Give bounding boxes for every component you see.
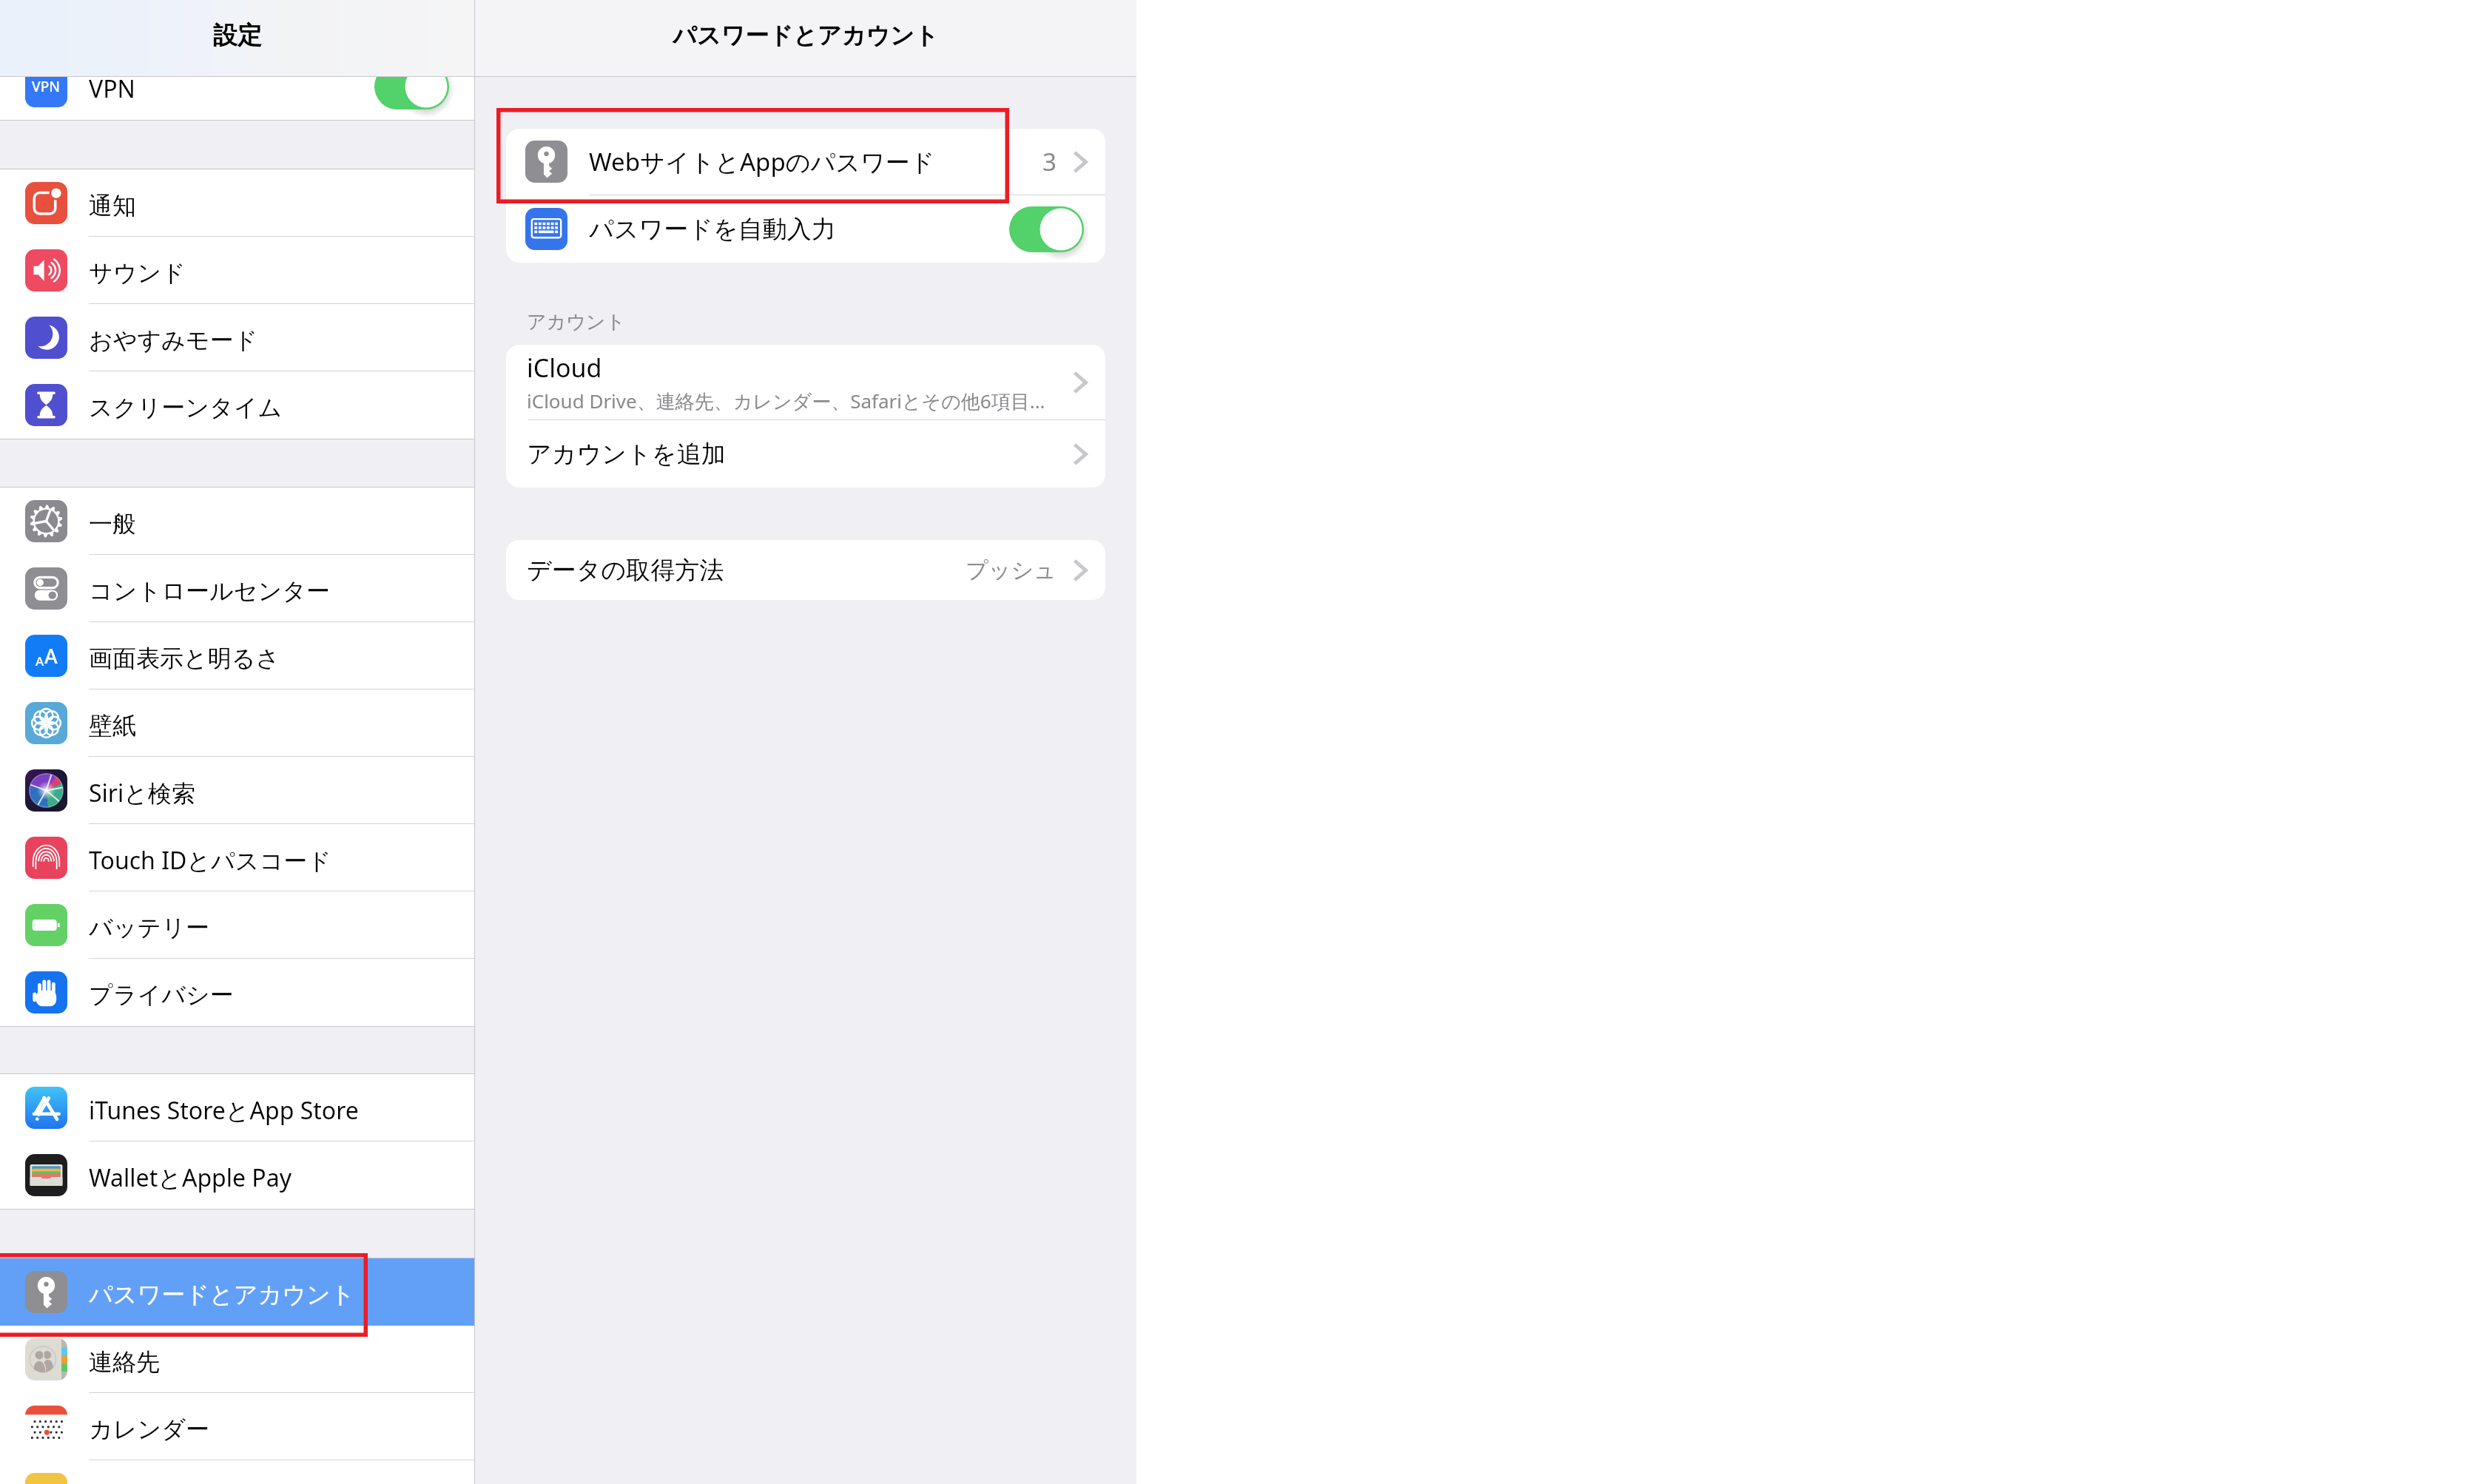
button[interactable]: WebサイトとAppのパスワード: [506, 129, 1105, 195]
staticText: データの取得方法: [527, 555, 966, 586]
staticText: プッシュ: [966, 556, 1057, 584]
button[interactable]: スクリーンタイム: [0, 371, 474, 439]
staticText: iCloud Drive、連絡先、カレンダー、Safariとその他6項目...: [527, 388, 1045, 414]
staticText: WalletとApple Pay: [89, 1161, 454, 1194]
button[interactable]: 通知: [0, 169, 474, 237]
staticText: おやすみモード: [89, 326, 454, 355]
button[interactable]: VPN on: [370, 59, 454, 114]
button[interactable]: iTunes StoreとApp Store: [0, 1074, 474, 1141]
staticText: 設定: [213, 20, 262, 51]
staticText: 通知: [89, 191, 454, 220]
staticText: VPN: [89, 72, 370, 105]
button[interactable]: 一般: [0, 488, 474, 555]
button[interactable]: おやすみモード: [0, 304, 474, 371]
staticText: アカウント: [527, 310, 626, 334]
staticText: パスワードを自動入力: [589, 214, 1005, 245]
staticText: パスワードとアカウント: [89, 1280, 454, 1309]
button[interactable]: Touch IDとパスコード: [0, 824, 474, 891]
staticText: 壁紙: [89, 711, 454, 741]
staticText: サウンド: [89, 258, 454, 288]
button[interactable]: アカウントを追加: [506, 420, 1105, 488]
staticText: 3: [1042, 145, 1057, 178]
button[interactable]: コントロールセンター: [0, 555, 474, 622]
staticText: コントロールセンター: [89, 576, 454, 606]
button[interactable]: A: [0, 622, 474, 689]
staticText: 画面表示と明るさ: [89, 644, 454, 673]
staticText: iTunes StoreとApp Store: [89, 1094, 454, 1127]
button[interactable]: カレンダー: [0, 1393, 474, 1460]
button[interactable]: パスワードを自動入力: [506, 195, 1105, 263]
staticText: バッテリー: [89, 913, 454, 942]
staticText: WebサイトとAppのパスワード: [589, 145, 1042, 178]
button[interactable]: 連絡先: [0, 1326, 474, 1393]
staticText: A: [36, 652, 44, 670]
staticText: アカウントを追加: [527, 439, 1070, 470]
button[interactable]: リマインダー: [0, 1460, 474, 1484]
staticText: パスワードとアカウント: [673, 21, 939, 50]
staticText: A: [44, 642, 58, 670]
staticText: スクリーンタイム: [89, 393, 454, 422]
staticText: カレンダー: [89, 1414, 454, 1444]
staticText: iCloud: [527, 351, 602, 385]
button[interactable]: パスワードを自動入力 on: [1005, 202, 1088, 257]
button[interactable]: VPN: [0, 53, 474, 120]
button[interactable]: データの取得方法: [506, 540, 1105, 600]
button[interactable]: 壁紙: [0, 689, 474, 757]
button[interactable]: パスワードとアカウント: [0, 1258, 474, 1326]
staticText: 連絡先: [89, 1347, 454, 1377]
staticText: Touch IDとパスコード: [89, 844, 454, 877]
staticText: Siriと検索: [89, 777, 454, 809]
button[interactable]: WalletとApple Pay: [0, 1141, 474, 1209]
button[interactable]: iCloud: [506, 345, 1105, 419]
button[interactable]: バッテリー: [0, 891, 474, 959]
button[interactable]: サウンド: [0, 237, 474, 304]
button[interactable]: プライバシー: [0, 959, 474, 1026]
button[interactable]: Siriと検索: [0, 757, 474, 824]
staticText: VPN: [32, 77, 61, 96]
staticText: プライバシー: [89, 980, 454, 1010]
staticText: 一般: [89, 509, 454, 539]
